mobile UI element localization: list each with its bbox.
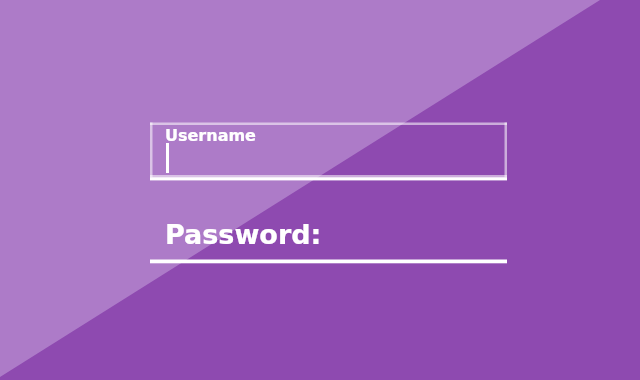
button[interactable]: Password text field (150, 216, 507, 264)
button[interactable]: Username text field (150, 122, 507, 180)
staticText: Password: (165, 219, 322, 250)
staticText: Username (165, 126, 256, 145)
